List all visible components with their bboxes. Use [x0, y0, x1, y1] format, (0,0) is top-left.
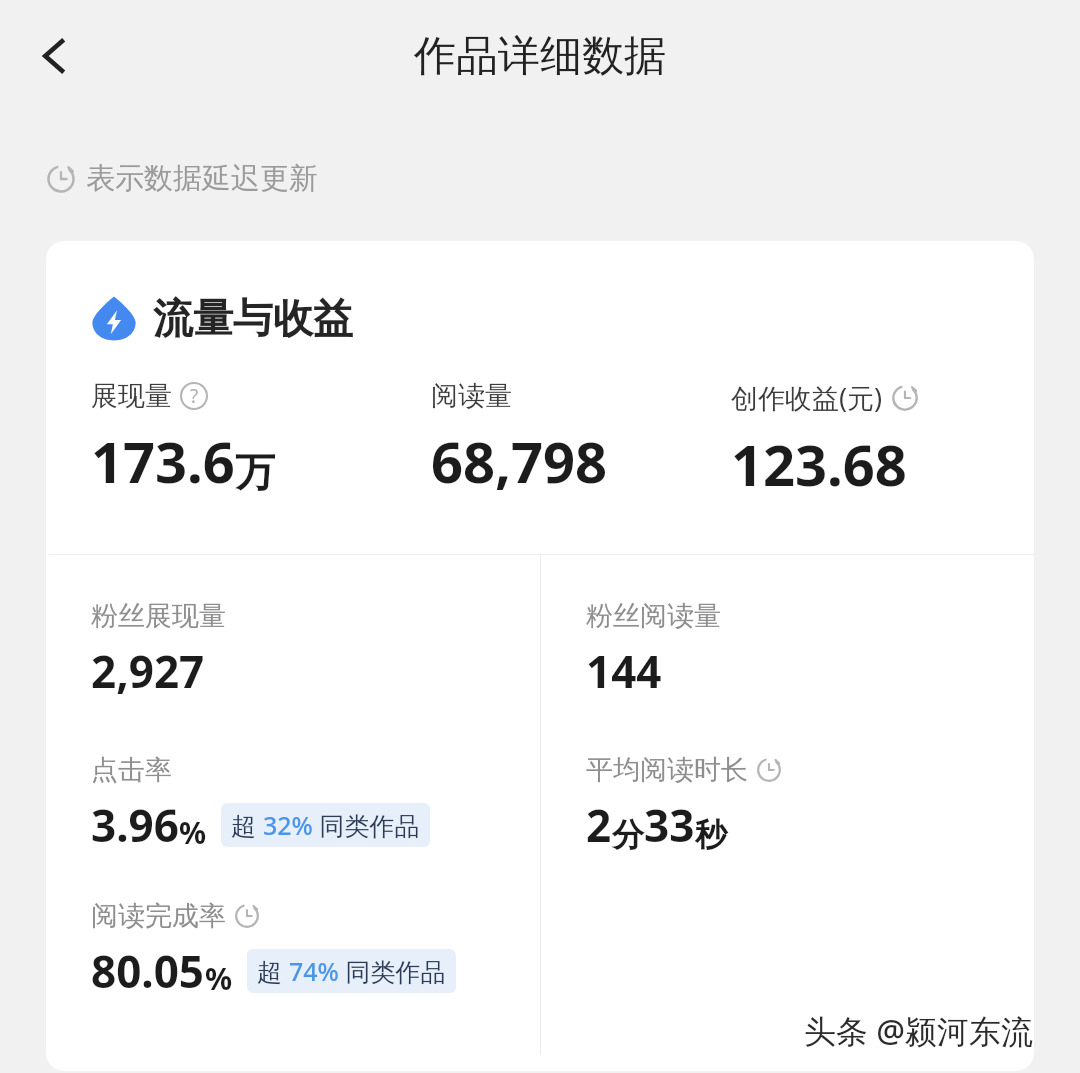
staticText: 粉丝阅读量 [586, 599, 721, 633]
staticText: 33 [644, 795, 695, 855]
button[interactable]: 超 [247, 949, 456, 993]
staticText: 32% [263, 808, 313, 842]
staticText: 粉丝展现量 [91, 599, 226, 633]
staticText: 2 [586, 795, 612, 855]
staticText: 平均阅读时长 [586, 753, 748, 787]
staticText: 头条 @颍河东流 [804, 1009, 1034, 1053]
staticText: 173.6 [91, 423, 235, 499]
staticText: 超 [231, 808, 263, 842]
staticText: 3.96 [91, 795, 179, 855]
staticText: 123.68 [731, 426, 907, 502]
staticText: 同类作品 [339, 954, 446, 988]
staticText: ? [190, 383, 199, 409]
staticText: 68,798 [431, 423, 608, 499]
staticText: 展现量 [91, 379, 172, 413]
staticText: 同类作品 [313, 808, 420, 842]
button[interactable]: 返回 [18, 20, 90, 92]
staticText: 74% [289, 954, 339, 988]
staticText: 万 [235, 447, 275, 497]
staticText: 创作收益(元) [731, 379, 883, 416]
staticText: 阅读完成率 [91, 899, 226, 933]
staticText: 2,927 [91, 641, 205, 701]
button[interactable]: 流量与收益 [91, 293, 353, 343]
staticText: 144 [586, 641, 662, 701]
staticText: 80.05 [91, 941, 205, 1001]
button[interactable]: 超 [221, 803, 430, 847]
staticText: 点击率 [91, 753, 172, 787]
staticText: 阅读量 [431, 379, 512, 413]
staticText: 表示数据延迟更新 [86, 160, 318, 197]
staticText: 流量与收益 [153, 293, 353, 343]
staticText: % [179, 812, 207, 853]
staticText: 分 [612, 815, 644, 855]
staticText: 超 [257, 954, 289, 988]
staticText: 作品详细数据 [414, 30, 666, 83]
staticText: % [205, 958, 233, 999]
button[interactable]: 表示数据延迟更新 [46, 160, 318, 197]
staticText: 秒 [695, 815, 727, 855]
